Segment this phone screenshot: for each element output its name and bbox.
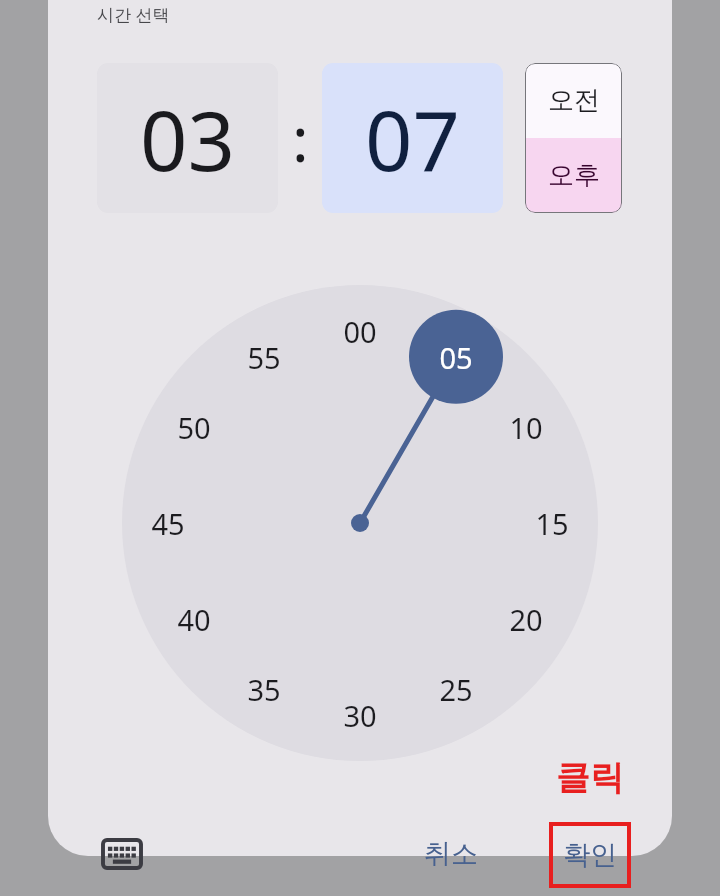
staticText: 클릭 <box>548 756 632 799</box>
staticText: 시간 선택 <box>97 3 170 26</box>
button[interactable]: 40 <box>164 598 224 640</box>
staticText: 55 <box>247 338 281 377</box>
staticText: 25 <box>439 670 473 709</box>
staticText: 45 <box>151 504 185 543</box>
button[interactable]: 35 <box>234 668 294 710</box>
staticText: 오후 <box>548 159 600 192</box>
staticText: 05 <box>439 338 473 377</box>
button[interactable]: 취소 <box>404 826 498 882</box>
staticText: 10 <box>509 408 543 447</box>
button[interactable]: 07 <box>322 63 503 213</box>
button[interactable]: 25 <box>426 668 486 710</box>
staticText: 00 <box>343 312 377 351</box>
button[interactable]: Minute clock dial <box>122 285 598 761</box>
staticText: 오전 <box>548 84 600 117</box>
staticText: 40 <box>177 600 211 639</box>
staticText: 확인 <box>563 838 617 872</box>
staticText: 03 <box>140 82 235 195</box>
button[interactable]: 오전 <box>525 63 622 138</box>
button[interactable]: Switch to text input <box>96 828 148 880</box>
button[interactable]: 30 <box>330 694 390 736</box>
button[interactable]: 05 <box>426 336 486 378</box>
button[interactable]: 50 <box>164 406 224 448</box>
button[interactable]: 00 <box>330 310 390 352</box>
staticText: 30 <box>343 696 377 735</box>
button[interactable]: 오후 <box>525 138 622 213</box>
staticText: 20 <box>509 600 543 639</box>
button[interactable]: 55 <box>234 336 294 378</box>
button[interactable]: 확인 <box>549 822 631 888</box>
button[interactable]: 15 <box>522 502 582 544</box>
button[interactable]: 45 <box>138 502 198 544</box>
staticText: : <box>292 96 309 180</box>
button[interactable]: 20 <box>496 598 556 640</box>
button[interactable]: 03 <box>97 63 278 213</box>
staticText: 07 <box>365 82 460 195</box>
staticText: 15 <box>535 504 569 543</box>
staticText: 50 <box>177 408 211 447</box>
staticText: 취소 <box>424 837 478 871</box>
button[interactable]: 10 <box>496 406 556 448</box>
staticText: 35 <box>247 670 281 709</box>
